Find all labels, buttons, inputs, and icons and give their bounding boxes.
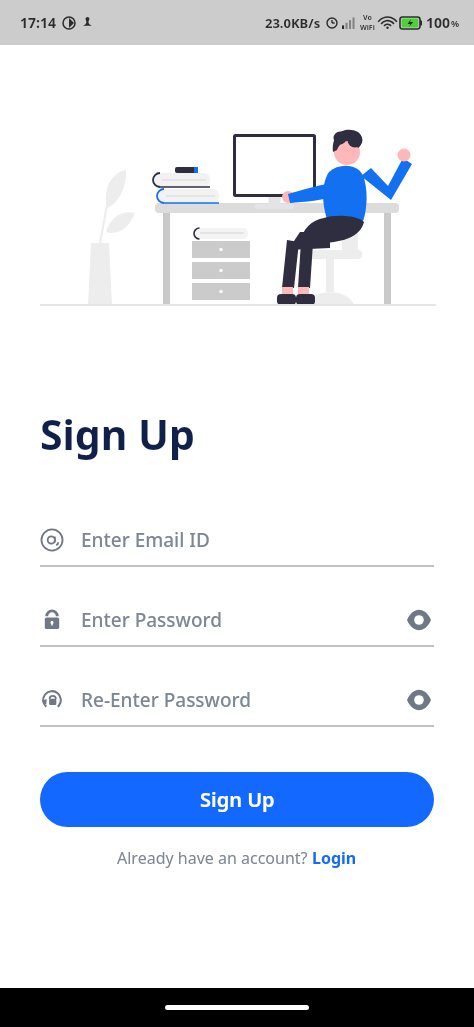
staticText: Login: [312, 847, 357, 869]
staticText: 17:14: [20, 13, 56, 32]
staticText: Enter Password: [81, 607, 222, 633]
staticText: 100: [426, 13, 451, 32]
button[interactable]: Show password: [404, 605, 434, 635]
button[interactable]: Enter Email ID: [40, 519, 434, 561]
staticText: %: [451, 17, 460, 29]
button[interactable]: Sign Up: [40, 772, 434, 827]
staticText: Re-Enter Password: [81, 687, 251, 713]
staticText: Sign Up: [200, 786, 275, 813]
staticText: Sign Up: [40, 406, 195, 462]
staticText: WiFi: [360, 23, 375, 33]
staticText: Enter Email ID: [81, 527, 210, 553]
button[interactable]: Show password: [404, 685, 434, 715]
staticText: 23.0KB/s: [265, 14, 321, 32]
button[interactable]: Enter Password: [40, 599, 434, 641]
staticText: Vo: [363, 13, 372, 23]
button[interactable]: Re-Enter Password: [40, 679, 434, 721]
button[interactable]: Home gesture: [165, 1005, 309, 1010]
button[interactable]: Login: [312, 847, 357, 869]
staticText: Already have an account?: [117, 847, 312, 869]
